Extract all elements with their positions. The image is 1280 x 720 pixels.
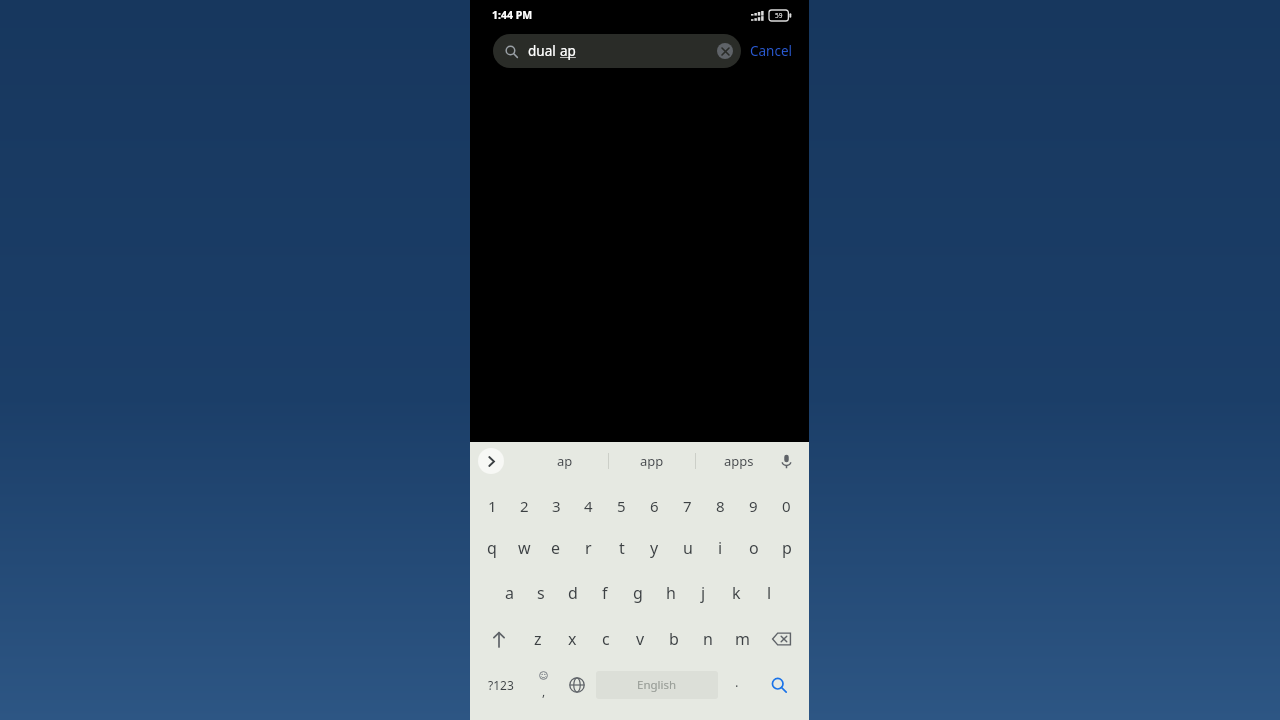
button[interactable]: f <box>589 570 621 616</box>
staticText: 1 <box>488 496 497 516</box>
button[interactable]: 6 <box>638 486 671 526</box>
button[interactable]: ?123 <box>476 662 526 708</box>
button[interactable]: n <box>691 616 725 662</box>
button[interactable]: c <box>589 616 623 662</box>
staticText: w <box>518 537 531 559</box>
staticText: 0 <box>782 496 791 516</box>
staticText: i <box>718 537 723 559</box>
staticText: 2 <box>520 496 529 516</box>
staticText: r <box>585 537 592 559</box>
button[interactable]: b <box>657 616 691 662</box>
staticText: q <box>487 537 497 559</box>
staticText: k <box>732 582 741 604</box>
button[interactable]: 3 <box>540 486 572 526</box>
button[interactable]: Change language <box>560 662 594 708</box>
staticText: 59 <box>775 11 783 20</box>
button[interactable]: w <box>508 526 540 570</box>
staticText: h <box>666 582 676 604</box>
button[interactable]: 1 <box>476 486 508 526</box>
button[interactable]: ap <box>521 442 608 480</box>
button[interactable]: 4 <box>572 486 605 526</box>
staticText: g <box>633 582 643 604</box>
button[interactable]: Search <box>754 662 803 708</box>
button[interactable]: app <box>609 442 695 480</box>
staticText: u <box>683 537 693 559</box>
button[interactable]: Backspace <box>759 616 803 662</box>
button[interactable]: 2 <box>508 486 540 526</box>
staticText: p <box>782 537 792 559</box>
button[interactable]: 5 <box>605 486 638 526</box>
staticText: 5 <box>617 496 626 516</box>
button[interactable]: dual <box>493 34 741 68</box>
staticText: apps <box>724 452 754 470</box>
button[interactable]: English <box>596 671 718 699</box>
button[interactable]: apps <box>696 442 782 480</box>
button[interactable]: e <box>540 526 572 570</box>
button[interactable]: 0 <box>770 486 803 526</box>
button[interactable]: v <box>623 616 657 662</box>
staticText: 4 <box>584 496 593 516</box>
staticText: z <box>534 628 542 650</box>
staticText: o <box>749 537 759 559</box>
button[interactable]: j <box>687 570 720 616</box>
staticText: 9 <box>749 496 758 516</box>
staticText: s <box>537 582 545 604</box>
staticText: 6 <box>650 496 659 516</box>
staticText: 7 <box>683 496 692 516</box>
staticText: a <box>505 582 514 604</box>
staticText: e <box>551 537 561 559</box>
staticText: . <box>735 673 739 691</box>
button[interactable]: x <box>555 616 589 662</box>
button[interactable]: d <box>557 570 589 616</box>
button[interactable]: h <box>654 570 687 616</box>
staticText: ap <box>557 452 573 470</box>
button[interactable]: l <box>753 570 786 616</box>
staticText: l <box>767 582 772 604</box>
button[interactable]: i <box>704 526 737 570</box>
staticText: ?123 <box>488 677 514 693</box>
button[interactable]: 7 <box>671 486 704 526</box>
button[interactable]: More suggestions <box>478 448 504 474</box>
staticText: 8 <box>716 496 725 516</box>
button[interactable]: Cancel <box>741 36 802 66</box>
button[interactable]: r <box>572 526 605 570</box>
button[interactable]: m <box>725 616 759 662</box>
button[interactable]: p <box>770 526 803 570</box>
button[interactable]: Shift <box>476 616 521 662</box>
button[interactable]: Emoji and comma <box>526 662 560 708</box>
button[interactable]: t <box>605 526 638 570</box>
staticText: m <box>735 628 750 650</box>
staticText: 1:44 PM <box>492 8 533 22</box>
staticText: f <box>602 582 608 604</box>
button[interactable]: Voice input <box>773 448 799 474</box>
button[interactable]: y <box>638 526 671 570</box>
button[interactable]: a <box>493 570 525 616</box>
button[interactable]: g <box>621 570 654 616</box>
button[interactable]: q <box>476 526 508 570</box>
staticText: Cancel <box>750 42 793 60</box>
staticText: app <box>640 452 664 470</box>
button[interactable]: 9 <box>737 486 770 526</box>
staticText: d <box>568 582 578 604</box>
staticText: x <box>568 628 577 650</box>
button[interactable]: u <box>671 526 704 570</box>
staticText: b <box>669 628 679 650</box>
staticText: y <box>650 537 659 559</box>
staticText: dual <box>528 42 560 60</box>
button[interactable]: 8 <box>704 486 737 526</box>
button[interactable]: k <box>720 570 753 616</box>
staticText: v <box>636 628 645 650</box>
button[interactable]: . <box>720 662 754 708</box>
button[interactable]: o <box>737 526 770 570</box>
staticText: English <box>637 677 677 693</box>
button[interactable]: Clear search <box>717 43 733 59</box>
staticText: n <box>703 628 713 650</box>
button[interactable]: z <box>521 616 555 662</box>
staticText: c <box>602 628 610 650</box>
staticText: j <box>701 582 706 604</box>
staticText: ap <box>560 42 576 60</box>
staticText: , <box>542 683 546 699</box>
staticText: 3 <box>552 496 561 516</box>
staticText: t <box>619 537 625 559</box>
button[interactable]: s <box>525 570 557 616</box>
